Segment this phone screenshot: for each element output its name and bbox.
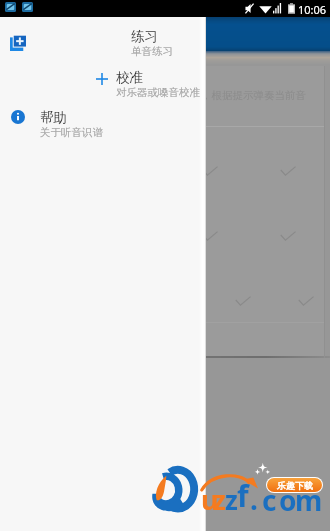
staticText: . — [250, 480, 258, 518]
staticText: z — [225, 482, 238, 517]
staticText: 对乐器或嗓音校准 — [116, 86, 200, 99]
other: 练习 — [10, 34, 27, 51]
other: 帮助 — [11, 110, 25, 124]
button[interactable]: 校准 — [0, 64, 203, 102]
staticText: 10:06 — [298, 2, 327, 17]
button[interactable]: 练习 — [0, 22, 203, 60]
other: 校准 — [96, 73, 108, 85]
staticText: 单音练习 — [131, 45, 173, 58]
staticText: u — [201, 481, 219, 518]
staticText: 关于听音识谱 — [40, 126, 103, 139]
staticText: c — [262, 481, 277, 519]
staticText: 乐趣下载 — [277, 480, 313, 491]
staticText: 帮助 — [40, 109, 67, 126]
staticText: 校准 — [116, 69, 143, 86]
staticText: o — [279, 481, 297, 519]
staticText: m — [295, 481, 323, 519]
staticText: 练习 — [131, 28, 158, 45]
staticText: z — [213, 482, 226, 517]
button[interactable]: 帮助 — [0, 104, 203, 142]
staticText: 请选择您要练习的音阶，根据提示弹奏当前音 — [96, 89, 306, 102]
staticText: f — [237, 475, 249, 516]
